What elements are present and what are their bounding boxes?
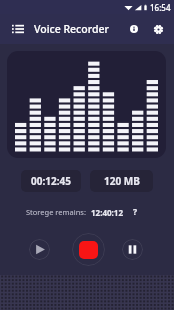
staticText: 00:12:45 bbox=[31, 174, 71, 188]
staticText: ? bbox=[133, 206, 138, 218]
staticText: 16:54 bbox=[150, 2, 171, 13]
button[interactable]: Menu bbox=[6, 17, 30, 41]
button[interactable]: Record bbox=[72, 233, 105, 266]
button[interactable]: Info bbox=[123, 18, 145, 40]
staticText: 12:40:12 bbox=[91, 207, 123, 218]
button[interactable]: Help bbox=[129, 206, 141, 218]
staticText: 120 MB bbox=[104, 174, 140, 188]
staticText: Voice Recorder bbox=[34, 22, 109, 36]
button[interactable]: Play bbox=[29, 239, 50, 260]
button[interactable]: Pause bbox=[122, 239, 143, 260]
button[interactable]: 00:12:45 bbox=[21, 170, 81, 192]
button[interactable]: 120 MB bbox=[90, 170, 153, 192]
staticText: Storege remains: bbox=[26, 207, 86, 217]
button[interactable]: Settings bbox=[147, 18, 169, 40]
